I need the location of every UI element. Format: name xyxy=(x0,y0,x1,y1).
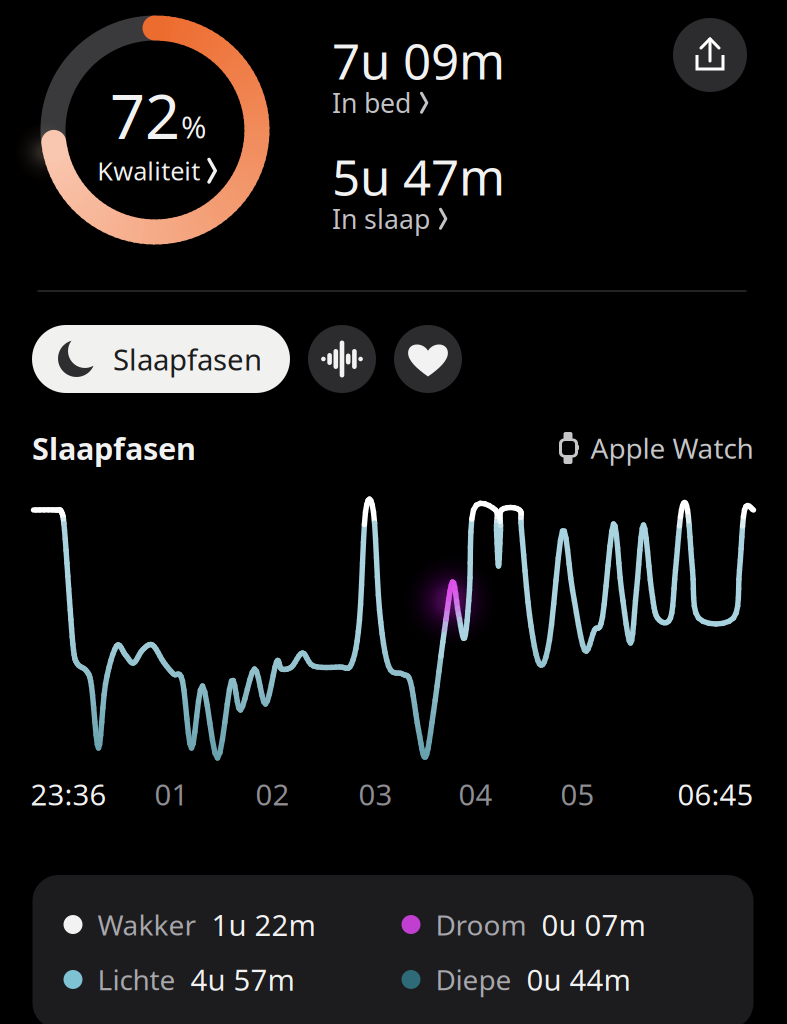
button[interactable]: Share xyxy=(673,18,747,92)
staticText: Lichte xyxy=(97,961,175,998)
staticText: % xyxy=(181,106,206,147)
staticText: Wakker xyxy=(97,906,196,943)
staticText: 05 xyxy=(560,774,594,813)
staticText: In slaap xyxy=(332,201,430,236)
button[interactable]: Sound xyxy=(308,325,376,393)
staticText: 4u 57m xyxy=(190,960,294,999)
staticText: Slaapfasen xyxy=(32,428,196,468)
button[interactable]: 7u 09m xyxy=(332,27,632,120)
button[interactable]: Heart rate xyxy=(394,325,462,393)
staticText: 01 xyxy=(154,774,188,813)
staticText: Slaapfasen xyxy=(113,339,262,378)
staticText: 1u 22m xyxy=(211,905,315,944)
button[interactable]: Kwaliteit xyxy=(97,154,219,187)
staticText: 72 xyxy=(110,74,180,156)
staticText: 5u 47m xyxy=(332,143,505,209)
staticText: Diepe xyxy=(435,961,511,998)
staticText: 06:45 xyxy=(677,774,753,813)
staticText: In bed xyxy=(332,85,411,120)
staticText: 0u 44m xyxy=(526,960,630,999)
staticText: Droom xyxy=(435,906,526,943)
staticText: 04 xyxy=(458,774,492,813)
staticText: Apple Watch xyxy=(590,429,753,467)
staticText: 23:36 xyxy=(30,774,106,813)
button[interactable]: 5u 47m xyxy=(332,143,632,236)
staticText: 02 xyxy=(255,774,289,813)
button[interactable]: Slaapfasen xyxy=(32,325,290,393)
staticText: Kwaliteit xyxy=(97,154,200,187)
staticText: 7u 09m xyxy=(332,27,505,93)
staticText: 03 xyxy=(358,774,392,813)
staticText: 0u 07m xyxy=(541,905,645,944)
